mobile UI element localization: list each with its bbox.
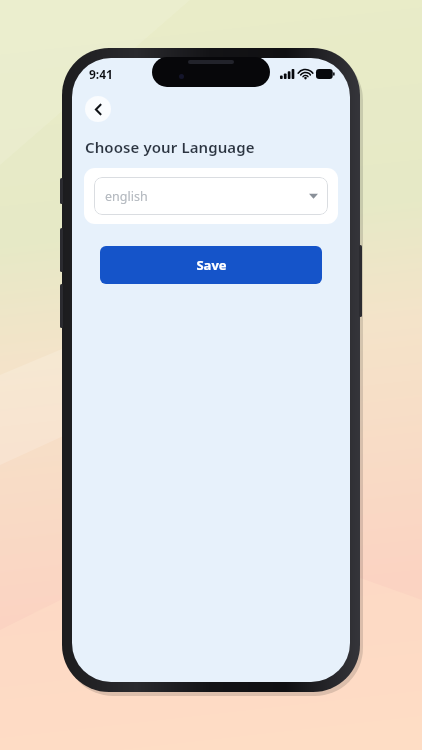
staticText: Save <box>196 256 227 274</box>
button[interactable]: Save <box>100 246 322 284</box>
button[interactable]: english <box>84 168 338 224</box>
staticText: Choose your Language <box>85 137 255 157</box>
staticText: english <box>105 188 148 205</box>
staticText: 9:41 <box>89 66 113 82</box>
button[interactable]: Back <box>85 96 111 122</box>
